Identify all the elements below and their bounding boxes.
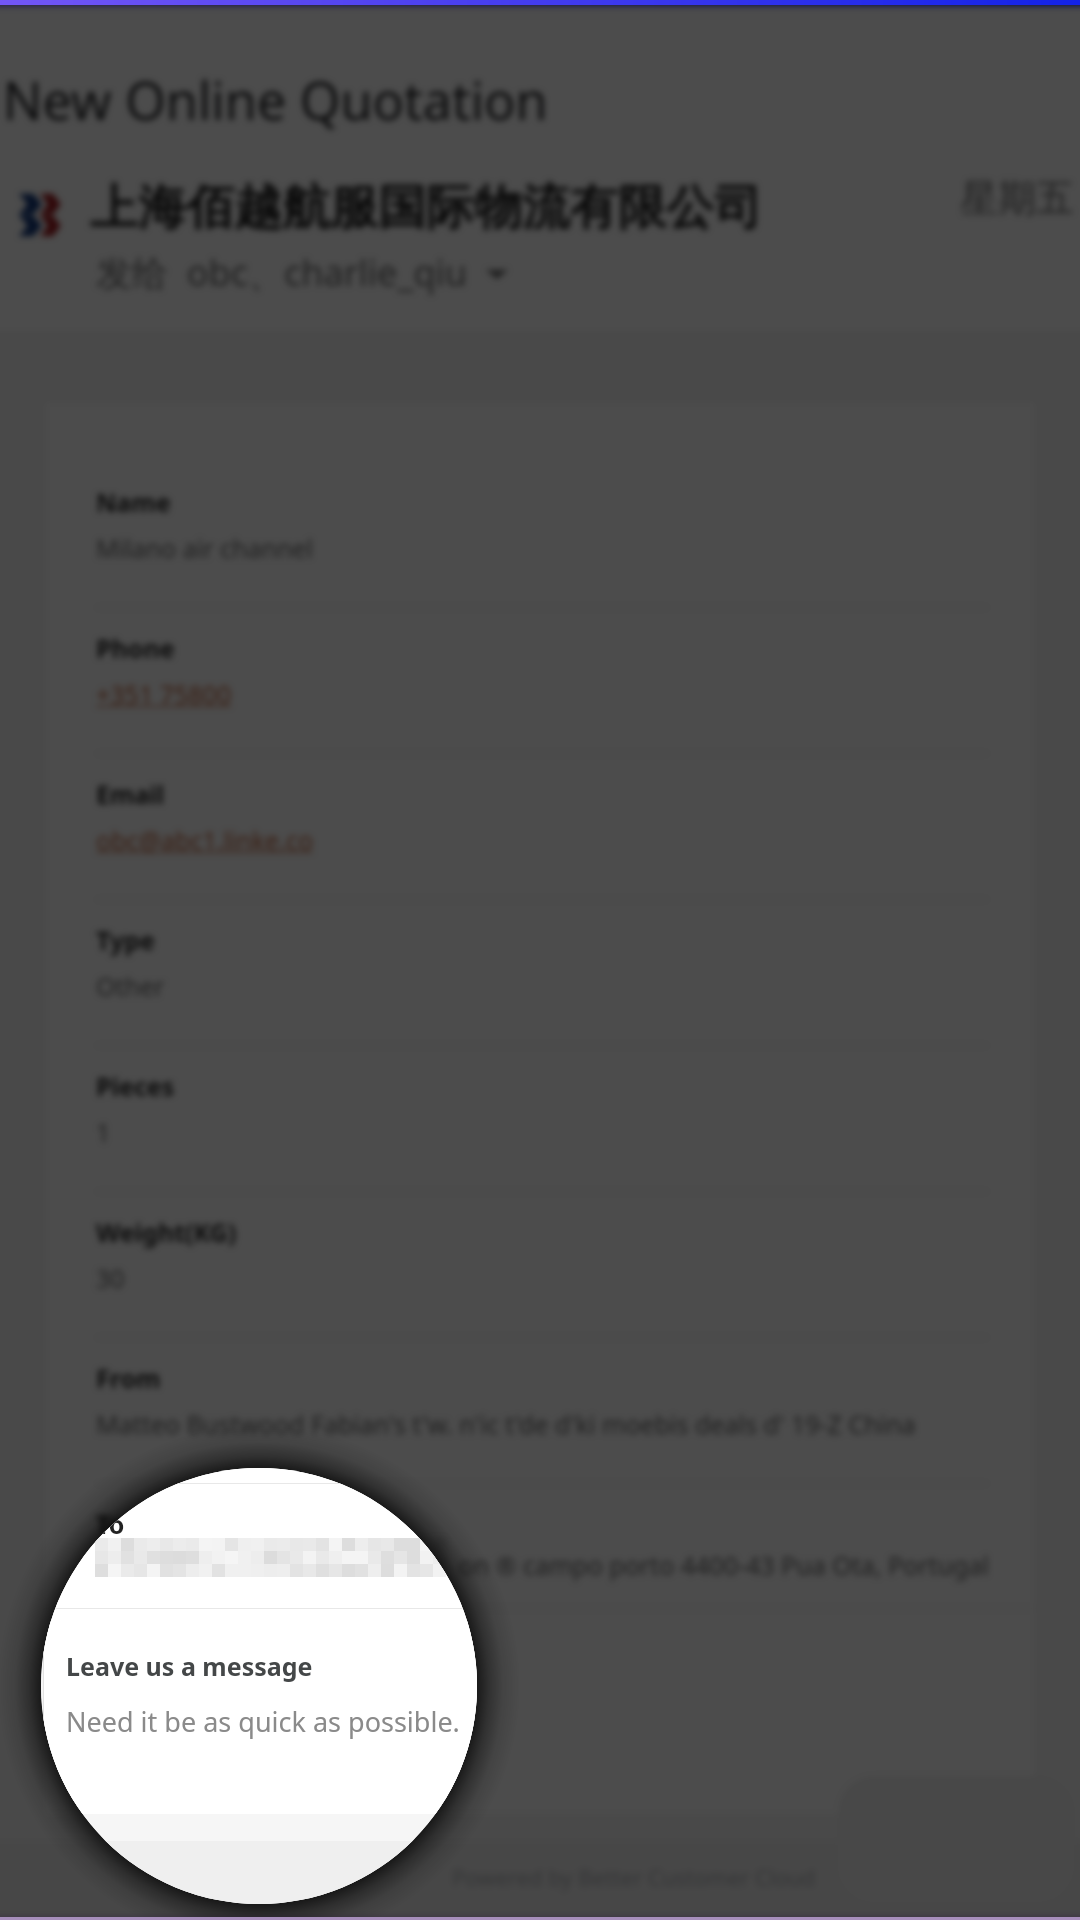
button[interactable]: +351 75800	[96, 677, 232, 711]
staticText: Milano air channel	[96, 531, 313, 565]
button[interactable]: 发给 obc、charlie_qiu	[96, 248, 508, 297]
other: Show details	[486, 262, 508, 284]
staticText: From	[96, 1361, 161, 1395]
staticText: 星期五	[960, 174, 1074, 222]
staticText: Name	[96, 485, 171, 519]
staticText: Weight(KG)	[96, 1215, 237, 1249]
staticText: Need it be as quick as possible.	[66, 1703, 460, 1740]
staticText: 发给 obc、charlie_qiu	[96, 248, 468, 297]
staticText: From	[96, 1361, 161, 1395]
staticText: on ® campo porto 4400-43 Pua Ota, Portug…	[452, 1548, 989, 1582]
staticText: Phone	[96, 631, 175, 665]
staticText: Email	[96, 777, 165, 811]
staticText: New Online Quotation	[3, 64, 548, 135]
staticText: 30	[96, 1261, 125, 1295]
staticText: Leave us a message	[66, 1649, 313, 1683]
staticText: To	[96, 1507, 125, 1541]
staticText: Milano air channel	[96, 531, 313, 565]
staticText: Email	[96, 777, 165, 811]
staticText: Pieces	[96, 1069, 175, 1103]
other: Show details	[486, 262, 508, 284]
staticText: +351 75800	[96, 677, 232, 711]
staticText: Name	[96, 485, 171, 519]
staticText: Other	[96, 969, 165, 1003]
staticText: Pieces	[96, 1069, 175, 1103]
button[interactable]: Sender avatar	[18, 192, 64, 238]
staticText: obc@abc1.linke.co	[96, 823, 314, 857]
staticText: New Online Quotation	[3, 64, 548, 135]
other: Sender avatar	[18, 192, 64, 238]
staticText: on ® campo porto 4400-43 Pua Ota, Portug…	[452, 1548, 989, 1582]
staticText: 星期五	[960, 174, 1074, 222]
button[interactable]: Leave us a message	[44, 1620, 1036, 1814]
staticText: Matteo Bustwood Fabian's t'w. n'ic t'de …	[96, 1407, 916, 1441]
staticText: Phone	[96, 631, 175, 665]
staticText: 发给 obc、charlie_qiu	[96, 248, 468, 297]
staticText: Leave us a message	[66, 1649, 313, 1683]
button[interactable]: obc@abc1.linke.co	[96, 823, 314, 857]
staticText: 1	[96, 1115, 111, 1149]
staticText: Matteo Bustwood Fabian's t'w. n'ic t'de …	[96, 1407, 916, 1441]
staticText: Type	[96, 923, 155, 957]
staticText: Need it be as quick as possible.	[66, 1703, 460, 1740]
staticText: Weight(KG)	[96, 1215, 237, 1249]
staticText: Type	[96, 923, 155, 957]
staticText: 上海佰越航服国际物流有限公司	[90, 178, 762, 238]
staticText: To	[96, 1507, 125, 1541]
staticText: 上海佰越航服国际物流有限公司	[90, 178, 762, 238]
staticText: Other	[96, 969, 165, 1003]
staticText: 30	[96, 1261, 125, 1295]
staticText: 1	[96, 1115, 111, 1149]
